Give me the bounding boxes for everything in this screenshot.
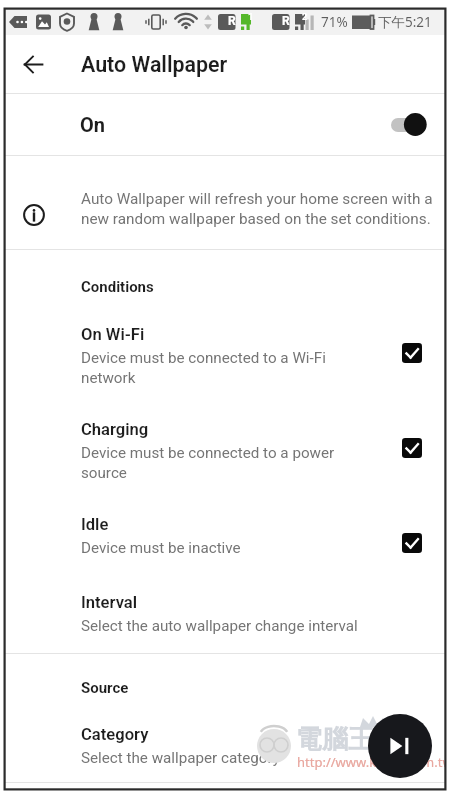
staticText: Interval [81, 593, 138, 612]
staticText: Conditions [81, 278, 154, 296]
button[interactable]: Play [368, 714, 432, 778]
button[interactable]: On [5, 94, 445, 155]
button[interactable] [5, 585, 445, 647]
staticText: 電腦王阿達 [296, 723, 426, 756]
staticText: Select the auto wallpaper change interva… [81, 617, 358, 635]
staticText: Device must be connected to a power sour… [81, 444, 335, 482]
staticText: Auto Wallpaper will refresh your home sc… [81, 190, 433, 228]
staticText: http://www.kocpc.com.tw [297, 753, 450, 771]
staticText: 1 [248, 12, 254, 23]
button[interactable]: Back [14, 45, 53, 84]
staticText: Category [81, 725, 149, 744]
staticText: Charging [81, 420, 149, 439]
staticText: 71% [321, 13, 348, 31]
staticText: Auto Wallpaper [81, 52, 228, 77]
staticText: 下午5:21 [378, 13, 432, 31]
button[interactable] [5, 412, 445, 500]
button[interactable] [5, 317, 445, 405]
staticText: R [228, 14, 236, 28]
button[interactable] [5, 507, 445, 575]
staticText: 2 [302, 12, 308, 23]
staticText: On Wi-Fi [81, 325, 145, 344]
staticText: Device must be inactive [81, 539, 241, 557]
staticText: On [80, 113, 105, 136]
staticText: R [282, 14, 290, 28]
staticText: Device must be connected to a Wi-Fi netw… [81, 349, 326, 387]
staticText: Select the wallpaper category [81, 749, 280, 767]
staticText: Source [81, 679, 129, 697]
button[interactable] [5, 717, 445, 779]
staticText: Idle [81, 515, 109, 534]
